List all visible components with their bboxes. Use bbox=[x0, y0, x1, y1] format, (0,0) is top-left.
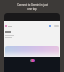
staticText: Connect to Gemini in just bbox=[17, 3, 48, 7]
staticText: one tap bbox=[27, 7, 37, 11]
